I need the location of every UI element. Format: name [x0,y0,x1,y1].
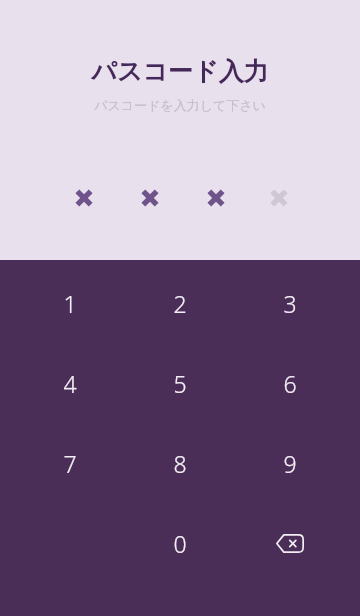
staticText: 6 [283,368,297,399]
button[interactable]: 0 [125,503,235,583]
staticText: 9 [283,448,297,479]
staticText: 3 [283,288,297,319]
staticText: 7 [63,448,77,479]
button[interactable]: 2 [125,263,235,343]
button[interactable]: 8 [125,423,235,503]
button[interactable]: 9 [235,423,345,503]
button[interactable]: 1 [15,263,125,343]
staticText: 8 [173,448,187,479]
staticText: パスコードを入力して下さい [94,97,266,113]
staticText: 2 [173,288,187,319]
staticText: 4 [63,368,77,399]
staticText: 5 [173,368,187,399]
staticText: 0 [173,528,187,559]
button[interactable]: 6 [235,343,345,423]
staticText: パスコード入力 [91,56,269,87]
button[interactable]: 5 [125,343,235,423]
staticText: 1 [63,288,77,319]
button[interactable]: Backspace [235,503,345,583]
button[interactable]: 4 [15,343,125,423]
button[interactable]: 3 [235,263,345,343]
button[interactable]: 7 [15,423,125,503]
